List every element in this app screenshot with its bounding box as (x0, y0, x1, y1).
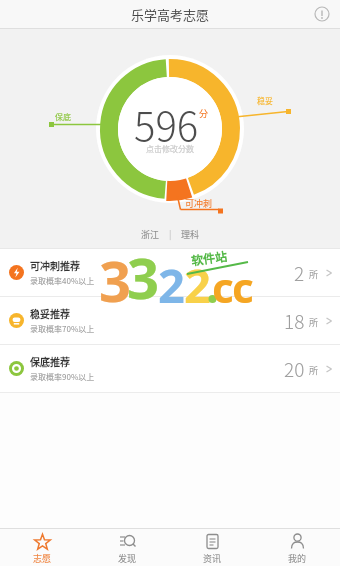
staticText: 可冲刺 (185, 197, 213, 210)
button[interactable]: 596 (0, 29, 340, 225)
staticText: | (169, 228, 172, 241)
staticText: c (212, 258, 234, 315)
staticText: 分 (199, 107, 209, 120)
staticText: c (232, 258, 254, 315)
button[interactable]: 资讯 (170, 529, 255, 565)
button[interactable]: 我的 (255, 529, 340, 565)
staticText: 2 (294, 259, 305, 287)
staticText: 保底推荐 (30, 354, 70, 368)
button[interactable]: 志愿 (0, 529, 85, 565)
button[interactable]: 浙江 (0, 225, 340, 243)
staticText: 稳妥 (257, 95, 273, 107)
staticText: 596 (134, 95, 199, 153)
staticText: 软件站 (190, 246, 229, 268)
staticText: 2 (158, 253, 185, 317)
staticText: 录取概率40%以上 (30, 275, 95, 287)
staticText: 录取概率90%以上 (30, 371, 95, 383)
staticText: 浙江 (141, 228, 160, 241)
button[interactable]: 稳妥推荐 (0, 297, 340, 344)
staticText: 3 (127, 239, 160, 315)
button[interactable]: 保底推荐 (0, 345, 340, 392)
staticText: 保底 (55, 111, 71, 123)
staticText: 发现 (118, 552, 137, 565)
staticText: 所 (309, 268, 319, 281)
button[interactable]: 乐学高考志愿 (0, 0, 340, 28)
staticText: 稳妥推荐 (30, 306, 70, 320)
staticText: 乐学高考志愿 (131, 5, 210, 24)
staticText: 资讯 (203, 552, 222, 565)
button[interactable]: 发现 (85, 529, 170, 565)
staticText: 2 (184, 253, 211, 317)
staticText: 点击修改分数 (146, 143, 194, 155)
staticText: 我的 (288, 552, 307, 565)
staticText: 18 (284, 307, 305, 335)
staticText: 可冲刺推荐 (30, 258, 80, 272)
staticText: 理科 (181, 228, 200, 241)
staticText: 录取概率70%以上 (30, 323, 95, 335)
staticText: 所 (309, 364, 319, 377)
button[interactable]: 可冲刺推荐 (0, 249, 340, 296)
staticText: 志愿 (33, 552, 52, 565)
staticText: 所 (309, 316, 319, 329)
staticText: 3 (99, 242, 132, 318)
staticText: 20 (284, 355, 305, 383)
